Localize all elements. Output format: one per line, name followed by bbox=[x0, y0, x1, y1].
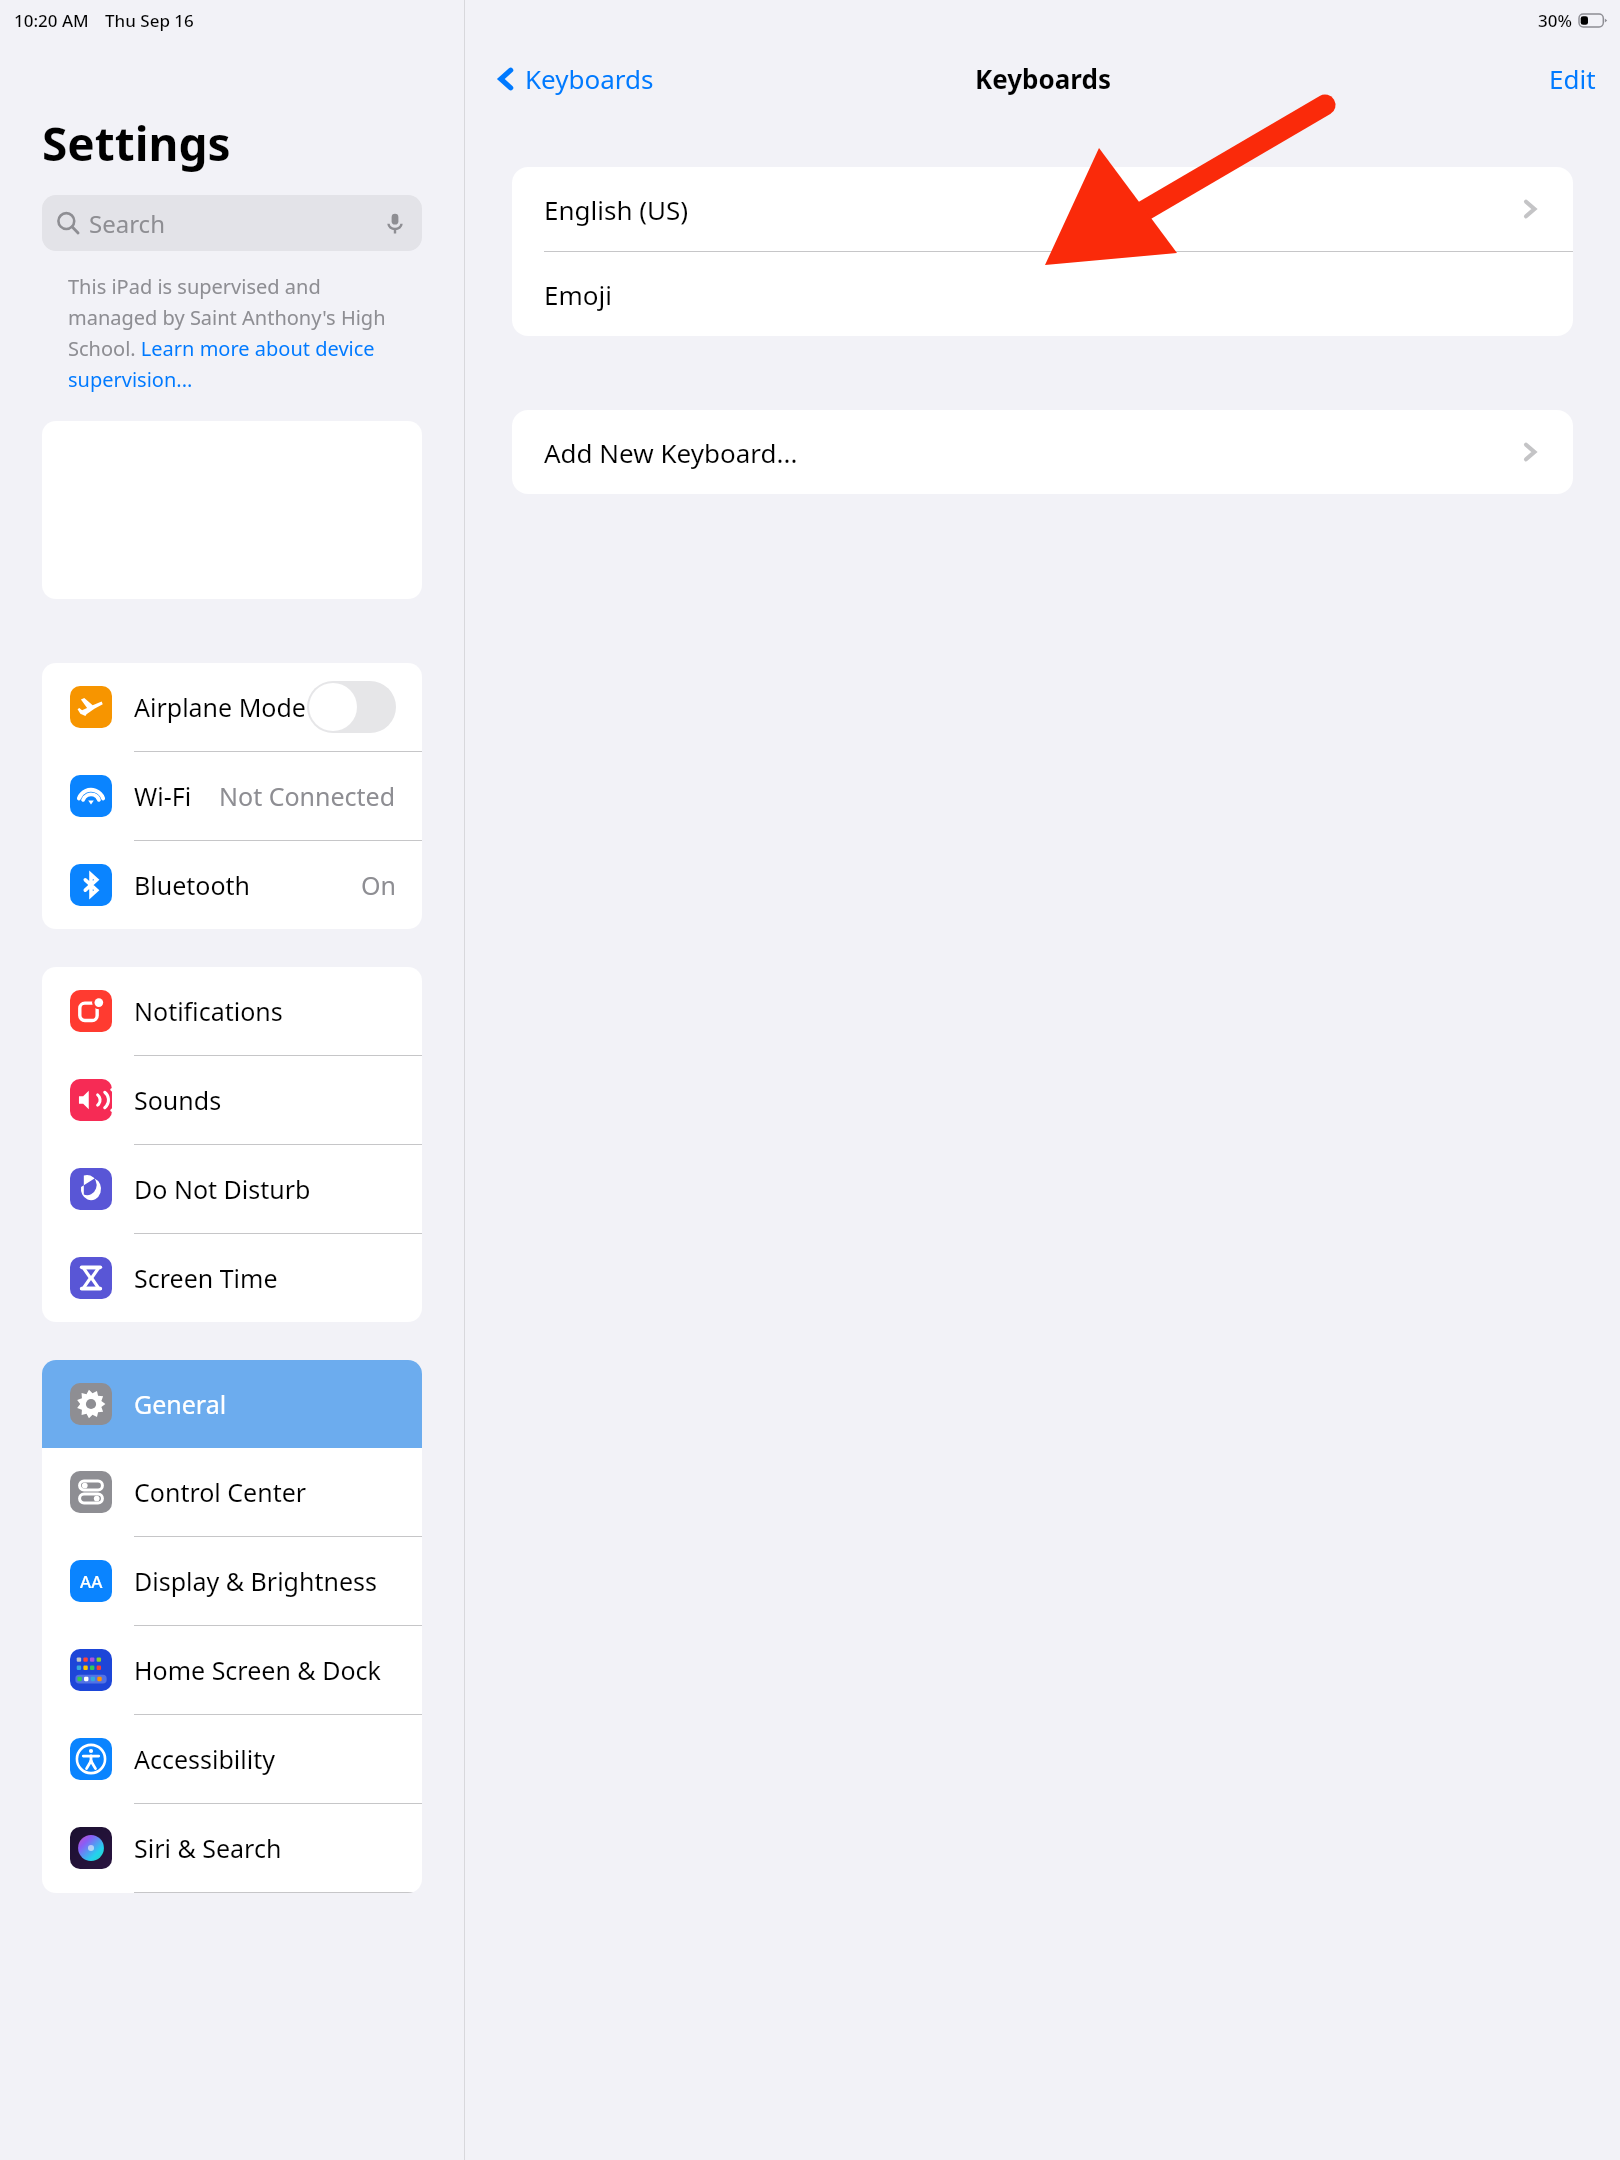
staticText: Airplane Mode bbox=[134, 690, 306, 724]
staticText: Sounds bbox=[134, 1083, 222, 1117]
staticText: Accessibility bbox=[134, 1742, 275, 1776]
button[interactable]: Control Center bbox=[42, 1448, 422, 1537]
staticText: 10:20 AM bbox=[14, 9, 89, 32]
button[interactable]: This iPad is supervised and managed by S… bbox=[68, 273, 406, 393]
staticText: Notifications bbox=[134, 994, 283, 1028]
button[interactable]: AA bbox=[42, 1537, 422, 1626]
staticText: AA bbox=[80, 1570, 103, 1593]
staticText: On bbox=[361, 868, 396, 902]
button[interactable]: Wi-Fi bbox=[42, 752, 422, 841]
staticText: Display & Brightness bbox=[134, 1564, 377, 1598]
staticText: 30% bbox=[1538, 9, 1572, 32]
staticText: Emoji bbox=[544, 277, 612, 312]
button[interactable]: Keyboards bbox=[489, 57, 658, 100]
button[interactable]: Do Not Disturb bbox=[42, 1145, 422, 1234]
button[interactable]: Notifications bbox=[42, 967, 422, 1056]
staticText: Screen Time bbox=[134, 1261, 278, 1295]
staticText: Settings bbox=[42, 112, 231, 175]
other: Dictate bbox=[382, 210, 408, 236]
button[interactable]: Sounds bbox=[42, 1056, 422, 1145]
button[interactable]: Screen Time bbox=[42, 1234, 422, 1322]
staticText: Bluetooth bbox=[134, 868, 251, 902]
button[interactable]: English (US) bbox=[544, 167, 1541, 251]
staticText: Keyboards bbox=[525, 61, 654, 96]
staticText: English (US) bbox=[544, 192, 689, 227]
button[interactable]: Airplane Mode toggle bbox=[307, 681, 396, 733]
button[interactable]: Bluetooth bbox=[42, 841, 422, 929]
button[interactable]: Add New Keyboard... bbox=[544, 410, 1541, 494]
button[interactable]: Siri & Search bbox=[42, 1804, 422, 1893]
button[interactable]: Accessibility bbox=[42, 1715, 422, 1804]
staticText: Wi-Fi bbox=[134, 779, 192, 813]
staticText: Do Not Disturb bbox=[134, 1172, 311, 1206]
staticText: Search bbox=[89, 207, 165, 240]
staticText: Home Screen & Dock bbox=[134, 1653, 381, 1687]
button[interactable]: Airplane Mode bbox=[42, 663, 422, 752]
button[interactable]: General bbox=[42, 1360, 422, 1448]
staticText: Not Connected bbox=[219, 779, 396, 813]
staticText: Add New Keyboard... bbox=[544, 435, 798, 470]
staticText: Siri & Search bbox=[134, 1831, 282, 1865]
staticText: General bbox=[134, 1387, 227, 1421]
staticText: Thu Sep 16 bbox=[105, 9, 194, 32]
button[interactable]: Edit bbox=[1549, 61, 1596, 96]
button[interactable]: Search bbox=[42, 195, 422, 251]
staticText: Keyboards bbox=[975, 61, 1111, 96]
button[interactable]: Emoji bbox=[544, 252, 1541, 336]
button[interactable]: Home Screen & Dock bbox=[42, 1626, 422, 1715]
staticText: Control Center bbox=[134, 1475, 307, 1509]
